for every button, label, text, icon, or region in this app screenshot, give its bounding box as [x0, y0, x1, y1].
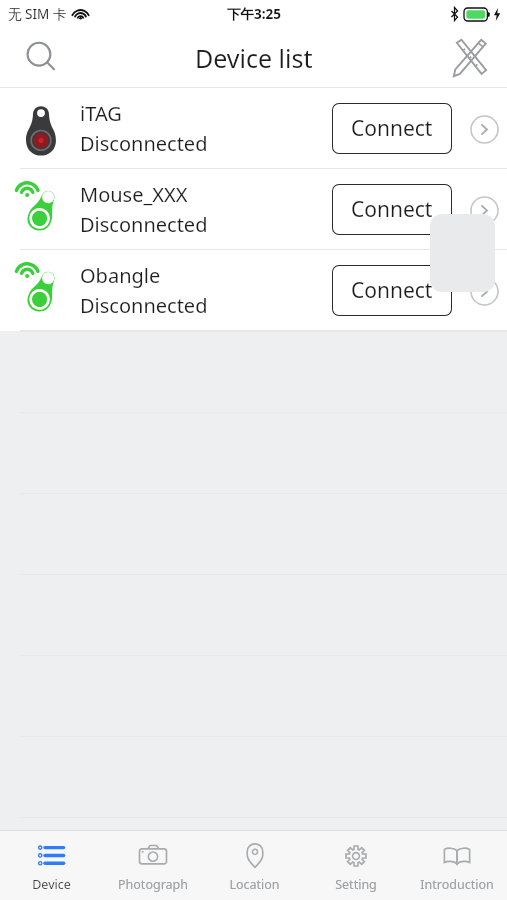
staticText: Mouse_XXX: [80, 181, 188, 208]
button[interactable]: Setting: [305, 831, 406, 900]
button[interactable]: Location: [204, 831, 305, 900]
staticText: Introduction: [420, 876, 494, 893]
staticText: Connect: [351, 114, 433, 143]
staticText: Device list: [195, 41, 313, 75]
button[interactable]: Photograph: [102, 831, 204, 900]
staticText: Disconnected: [80, 130, 208, 157]
button[interactable]: Obangle: [0, 250, 507, 331]
staticText: Setting: [335, 876, 377, 893]
staticText: 无 SIM 卡: [8, 5, 67, 23]
staticText: Disconnected: [80, 292, 208, 319]
staticText: iTAG: [80, 100, 122, 127]
staticText: Disconnected: [80, 211, 208, 238]
staticText: Photograph: [118, 876, 188, 893]
staticText: Location: [229, 876, 280, 893]
button[interactable]: Details: [467, 193, 501, 227]
button[interactable]: Details: [467, 274, 501, 308]
button[interactable]: Tools: [441, 30, 497, 86]
staticText: Obangle: [80, 262, 161, 289]
staticText: Device: [32, 876, 71, 893]
button[interactable]: Mouse_XXX: [0, 169, 507, 250]
button[interactable]: Connect: [332, 184, 452, 235]
staticText: Connect: [351, 195, 433, 224]
button[interactable]: Details: [467, 112, 501, 146]
button[interactable]: Connect: [332, 103, 452, 154]
button[interactable]: Connect: [332, 265, 452, 316]
staticText: Connect: [351, 276, 433, 305]
button[interactable]: Search: [14, 30, 70, 86]
button[interactable]: Device: [0, 831, 102, 900]
button[interactable]: Introduction: [406, 831, 507, 900]
button[interactable]: iTAG: [0, 88, 507, 169]
staticText: 下午3:25: [227, 5, 281, 23]
